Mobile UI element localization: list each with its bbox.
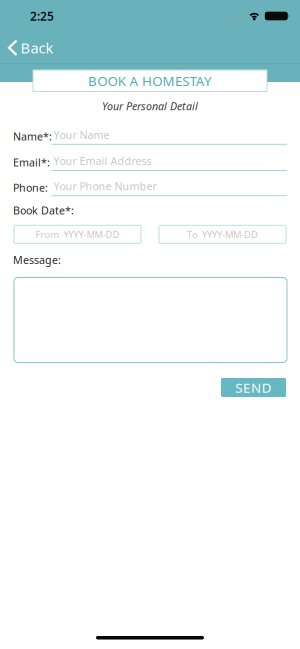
staticText: Email*: (13, 155, 50, 169)
staticText: BOOK A HOMESTAY (88, 72, 212, 90)
staticText: Message: (13, 253, 61, 267)
button[interactable]: Your Email Address (51, 154, 287, 171)
button[interactable]: To YYYY-MM-DD (159, 225, 286, 243)
button[interactable]: Message (0, 277, 300, 362)
staticText: Name*: (13, 129, 52, 143)
button[interactable]: Your Name (51, 128, 287, 145)
staticText: Your Phone Number (53, 179, 156, 193)
staticText: Your Email Address (53, 154, 151, 168)
staticText: From YYYY-MM-DD (35, 228, 119, 240)
staticText: Your Name (53, 128, 109, 142)
button[interactable]: Back (0, 38, 53, 57)
staticText: Phone: (13, 180, 48, 195)
staticText: Book Date*: (13, 203, 74, 217)
staticText: SEND (235, 379, 272, 396)
staticText: To YYYY-MM-DD (187, 228, 258, 240)
staticText: Your Personal Detail (102, 99, 198, 113)
staticText: Back (20, 38, 53, 57)
button[interactable]: Your Phone Number (51, 179, 287, 196)
button[interactable]: From YYYY-MM-DD (14, 225, 141, 243)
staticText: 2:25 (30, 8, 54, 24)
button[interactable]: SEND (221, 378, 286, 397)
